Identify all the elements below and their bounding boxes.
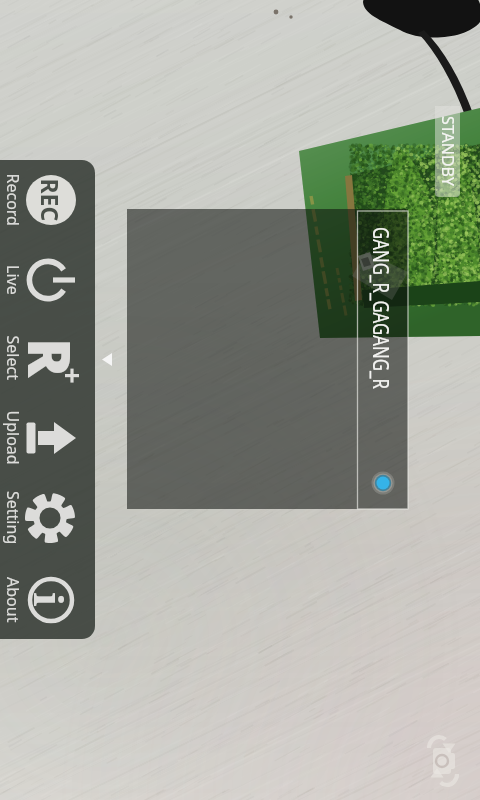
button[interactable]: About [0,562,95,638]
button[interactable]: Record [0,162,95,238]
button[interactable]: Select [0,320,95,396]
button[interactable]: Live [0,242,95,318]
button[interactable]: Setting [0,480,95,556]
button[interactable]: Collapse menu [96,344,117,374]
button[interactable]: Upload [0,400,95,476]
button[interactable]: Switch camera [425,733,461,788]
